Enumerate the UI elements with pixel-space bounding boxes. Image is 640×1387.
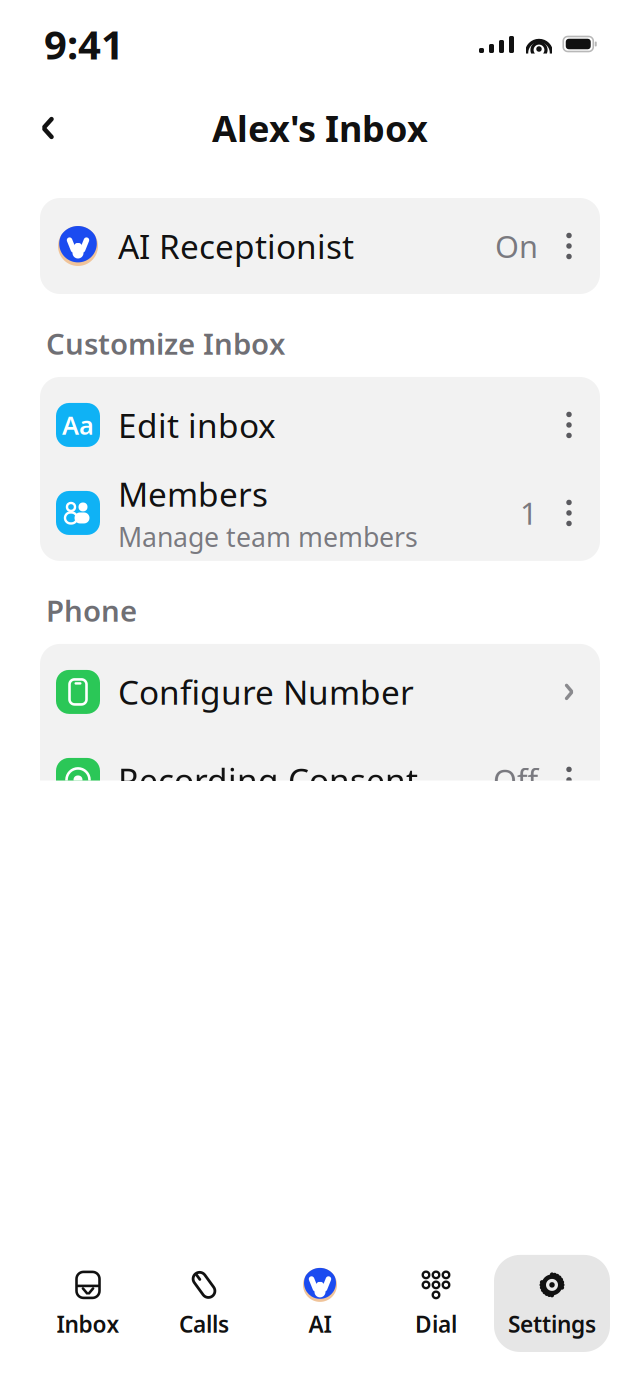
staticText: Members [118, 472, 268, 516]
button[interactable]: AI [262, 1255, 378, 1352]
button[interactable]: Configure Number [40, 648, 600, 736]
staticText: On [495, 226, 538, 266]
staticText: Recording Consent [118, 758, 418, 802]
staticText: Alex's Inbox [212, 104, 428, 152]
button[interactable]: Recording Consent [40, 736, 600, 824]
staticText: Configure Number [118, 670, 414, 714]
staticText: Calls [179, 1309, 229, 1339]
button[interactable]: Calls [146, 1255, 262, 1352]
staticText: 9:41 [44, 17, 124, 70]
staticText: Inbox [56, 1309, 119, 1339]
button[interactable]: AI Receptionist [40, 202, 600, 290]
staticText: Off [493, 759, 538, 800]
staticText: Settings [508, 1309, 596, 1339]
button[interactable]: Members [40, 469, 600, 557]
staticText: Edit inbox [118, 403, 276, 447]
button[interactable]: Inbox [30, 1255, 146, 1352]
staticText: AI Receptionist [118, 224, 354, 268]
button[interactable]: Settings [494, 1255, 610, 1352]
staticText: Dial [415, 1309, 457, 1339]
staticText: Aa [62, 408, 94, 442]
staticText: Manage team members [118, 519, 418, 554]
staticText: Customize Inbox [46, 324, 285, 363]
staticText: AI [308, 1309, 331, 1339]
button[interactable]: Aa [40, 381, 600, 469]
button[interactable]: Notification Schedule [40, 1179, 600, 1267]
staticText: Phone [46, 591, 137, 630]
staticText: 1 [520, 493, 538, 533]
button[interactable]: Dial [378, 1255, 494, 1352]
button[interactable]: Back [18, 98, 78, 158]
